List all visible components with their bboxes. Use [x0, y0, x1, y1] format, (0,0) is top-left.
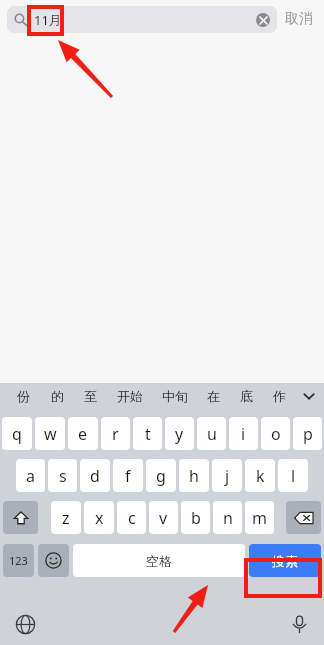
staticText: d [90, 465, 100, 487]
button[interactable]: d [80, 459, 110, 492]
button[interactable]: s [48, 459, 77, 492]
staticText: k [256, 465, 265, 487]
staticText: 底 [240, 388, 253, 404]
staticText: 11月 [34, 11, 62, 29]
staticText: l [291, 465, 296, 487]
button[interactable]: 份 [6, 383, 40, 409]
button[interactable]: r [101, 417, 130, 450]
button[interactable]: 底 [230, 383, 263, 409]
staticText: v [159, 507, 168, 529]
button[interactable]: k [245, 459, 275, 492]
button[interactable]: a [16, 459, 45, 492]
staticText: r [112, 423, 119, 445]
staticText: b [191, 507, 201, 529]
staticText: 至 [84, 388, 97, 404]
button[interactable]: 作 [263, 383, 296, 409]
button[interactable]: 中旬 [152, 383, 197, 409]
staticText: j [225, 465, 230, 487]
staticText: q [12, 423, 22, 445]
button[interactable]: l [278, 459, 308, 492]
button[interactable]: More suggestions [296, 383, 322, 409]
staticText: t [145, 423, 151, 445]
staticText: 搜索 [272, 553, 298, 569]
button[interactable]: 123 [3, 544, 34, 577]
staticText: 取消 [285, 10, 313, 28]
button[interactable]: 的 [40, 383, 74, 409]
button[interactable]: q [2, 417, 32, 450]
button[interactable]: x [84, 501, 114, 534]
button[interactable]: v [149, 501, 178, 534]
staticText: n [223, 507, 233, 529]
staticText: g [156, 465, 166, 487]
staticText: y [175, 423, 184, 445]
button[interactable]: Change keyboard [10, 609, 40, 639]
button[interactable]: 至 [74, 383, 107, 409]
staticText: s [59, 465, 67, 487]
button[interactable]: Emoji [38, 544, 69, 577]
staticText: a [26, 465, 35, 487]
staticText: c [128, 507, 136, 529]
button[interactable]: u [197, 417, 226, 450]
button[interactable]: 11月 [7, 6, 277, 33]
button[interactable]: h [179, 459, 209, 492]
staticText: 123 [9, 553, 28, 568]
button[interactable]: i [229, 417, 258, 450]
button[interactable]: 取消 [277, 6, 317, 32]
staticText: 空格 [146, 553, 172, 569]
button[interactable]: Shift [3, 501, 38, 534]
staticText: i [241, 423, 246, 445]
staticText: p [303, 423, 313, 445]
staticText: e [78, 423, 88, 445]
button[interactable]: 空格 [73, 544, 245, 577]
staticText: x [95, 507, 104, 529]
button[interactable]: t [133, 417, 162, 450]
button[interactable]: 搜索 [249, 544, 321, 577]
button[interactable]: z [51, 501, 81, 534]
button[interactable]: 开始 [107, 383, 152, 409]
button[interactable]: c [117, 501, 146, 534]
button[interactable]: n [213, 501, 242, 534]
button[interactable]: p [293, 417, 322, 450]
button[interactable]: 在 [197, 383, 230, 409]
staticText: 的 [51, 388, 64, 404]
staticText: 作 [273, 388, 286, 404]
button[interactable]: o [261, 417, 290, 450]
button[interactable]: w [35, 417, 65, 450]
staticText: o [271, 423, 281, 445]
staticText: 在 [207, 388, 220, 404]
button[interactable]: g [146, 459, 176, 492]
staticText: 份 [17, 388, 30, 404]
button[interactable]: f [113, 459, 143, 492]
staticText: w [44, 423, 57, 445]
staticText: h [189, 465, 199, 487]
button[interactable]: Delete [286, 501, 321, 534]
staticText: u [207, 423, 217, 445]
button[interactable]: m [245, 501, 274, 534]
button[interactable]: b [181, 501, 210, 534]
button[interactable]: Clear text [256, 13, 270, 27]
staticText: f [125, 465, 131, 487]
staticText: 开始 [117, 388, 143, 404]
button[interactable]: Voice input [284, 609, 314, 639]
button[interactable]: j [212, 459, 242, 492]
staticText: z [62, 507, 70, 529]
button[interactable]: y [165, 417, 194, 450]
button[interactable]: e [68, 417, 98, 450]
staticText: 中旬 [162, 388, 188, 404]
staticText: m [252, 507, 267, 529]
